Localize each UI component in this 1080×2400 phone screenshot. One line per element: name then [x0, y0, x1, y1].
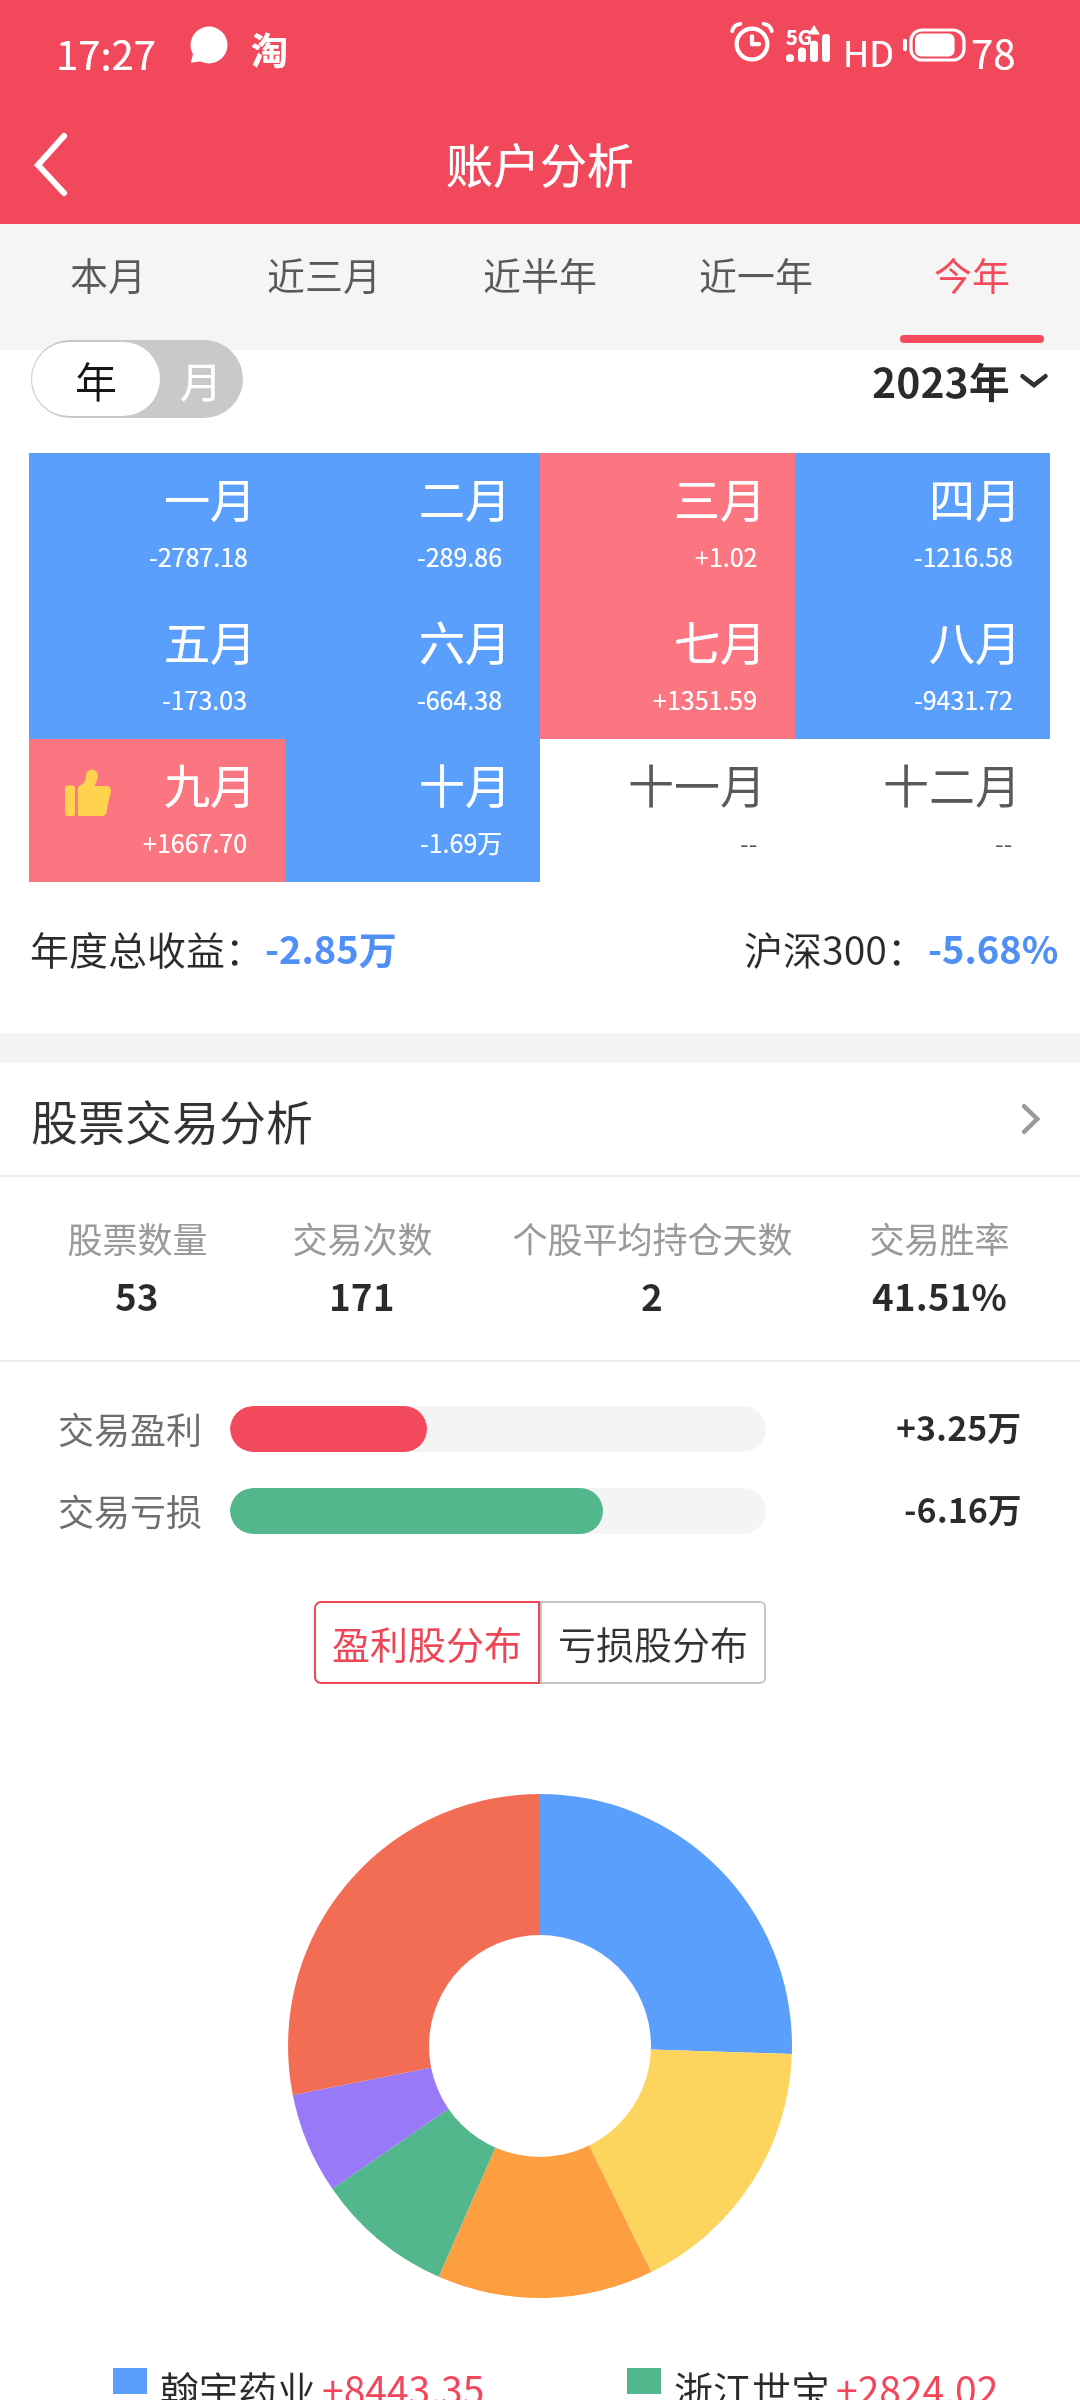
button[interactable]: 一月 — [29, 453, 285, 596]
staticText: 浙江世宝 — [674, 2360, 831, 2400]
staticText: +3.25万 — [896, 1402, 1022, 1448]
staticText: 十月 — [419, 750, 511, 817]
staticText: 41.51% — [872, 1268, 1007, 1322]
staticText: +8443.35 — [322, 2360, 485, 2400]
staticText: HD — [843, 25, 894, 77]
staticText: 近一年 — [699, 246, 814, 301]
staticText: -2.85万 — [265, 920, 397, 975]
staticText: 九月 — [164, 750, 256, 817]
staticText: 78 — [971, 23, 1016, 81]
staticText: -- — [995, 824, 1013, 860]
staticText: 二月 — [419, 464, 511, 531]
staticText: -5.68% — [928, 920, 1059, 975]
staticText: -664.38 — [417, 681, 503, 717]
staticText: -9431.72 — [914, 681, 1013, 717]
staticText: 近三月 — [267, 246, 382, 301]
staticText: 月 — [180, 349, 223, 410]
staticText: 年 — [75, 349, 118, 410]
button[interactable]: 十二月 — [795, 739, 1050, 882]
staticText: 年度总收益： — [30, 920, 265, 976]
staticText: 八月 — [929, 607, 1021, 674]
button[interactable]: 九月 — [29, 739, 285, 882]
staticText: 171 — [329, 1268, 395, 1322]
staticText: +2824.02 — [836, 2360, 999, 2400]
staticText: 七月 — [674, 607, 766, 674]
button[interactable]: 十一月 — [540, 739, 795, 882]
staticText: 十二月 — [883, 750, 1021, 817]
staticText: 亏损股分布 — [558, 1615, 749, 1670]
staticText: 53 — [115, 1268, 159, 1322]
staticText: +1351.59 — [653, 681, 758, 717]
staticText: 个股平均持仓天数 — [512, 1212, 793, 1263]
staticText: 沪深300： — [744, 920, 926, 976]
staticText: 交易次数 — [292, 1212, 433, 1263]
staticText: -1216.58 — [914, 538, 1013, 574]
button[interactable]: 2023年 — [872, 350, 1050, 409]
staticText: 17:27 — [56, 24, 156, 82]
button[interactable]: 十月 — [285, 739, 540, 882]
staticText: 交易盈利 — [58, 1402, 203, 1448]
button[interactable]: 亏损股分布 — [540, 1601, 766, 1684]
staticText: 5G — [786, 22, 813, 51]
button[interactable]: 今年 — [864, 224, 1080, 350]
staticText: 盈利股分布 — [332, 1615, 523, 1670]
button[interactable]: 月 — [159, 340, 243, 418]
button[interactable]: 盈利股分布 — [314, 1601, 540, 1684]
staticText: -289.86 — [417, 538, 503, 574]
button[interactable]: 股票交易分析 — [31, 1063, 1050, 1175]
button[interactable]: 三月 — [540, 453, 795, 596]
button[interactable]: 近半年 — [432, 224, 648, 350]
staticText: 六月 — [419, 607, 511, 674]
button[interactable]: 年 — [32, 342, 160, 416]
staticText: 2 — [641, 1268, 663, 1322]
staticText: 淘 — [251, 22, 288, 76]
staticText: 账户分析 — [446, 128, 634, 196]
button[interactable]: 四月 — [795, 453, 1050, 596]
staticText: +1.02 — [695, 538, 758, 574]
staticText: -1.69万 — [420, 824, 503, 860]
button[interactable]: 六月 — [285, 596, 540, 739]
staticText: -6.16万 — [904, 1484, 1022, 1530]
staticText: 近半年 — [483, 246, 598, 301]
button[interactable]: 八月 — [795, 596, 1050, 739]
button[interactable]: 近三月 — [216, 224, 432, 350]
staticText: 交易胜率 — [869, 1212, 1010, 1263]
button[interactable]: 七月 — [540, 596, 795, 739]
button[interactable]: 二月 — [285, 453, 540, 596]
staticText: 三月 — [674, 464, 766, 531]
staticText: 本月 — [70, 246, 147, 301]
staticText: 翰宇药业 — [160, 2360, 317, 2400]
staticText: 四月 — [929, 464, 1021, 531]
staticText: 股票数量 — [67, 1212, 208, 1263]
button[interactable]: 五月 — [29, 596, 285, 739]
staticText: 交易亏损 — [58, 1484, 203, 1530]
staticText: 十一月 — [628, 750, 766, 817]
button[interactable]: 本月 — [0, 224, 216, 350]
staticText: 一月 — [164, 464, 256, 531]
staticText: 股票交易分析 — [31, 1085, 313, 1153]
staticText: -173.03 — [162, 681, 248, 717]
staticText: -- — [740, 824, 758, 860]
button[interactable]: 近一年 — [648, 224, 864, 350]
staticText: 五月 — [164, 607, 256, 674]
staticText: -2787.18 — [149, 538, 248, 574]
staticText: +1667.70 — [143, 824, 248, 860]
staticText: 2023年 — [872, 350, 1010, 409]
button[interactable]: Back — [12, 120, 102, 210]
staticText: 今年 — [934, 246, 1011, 301]
